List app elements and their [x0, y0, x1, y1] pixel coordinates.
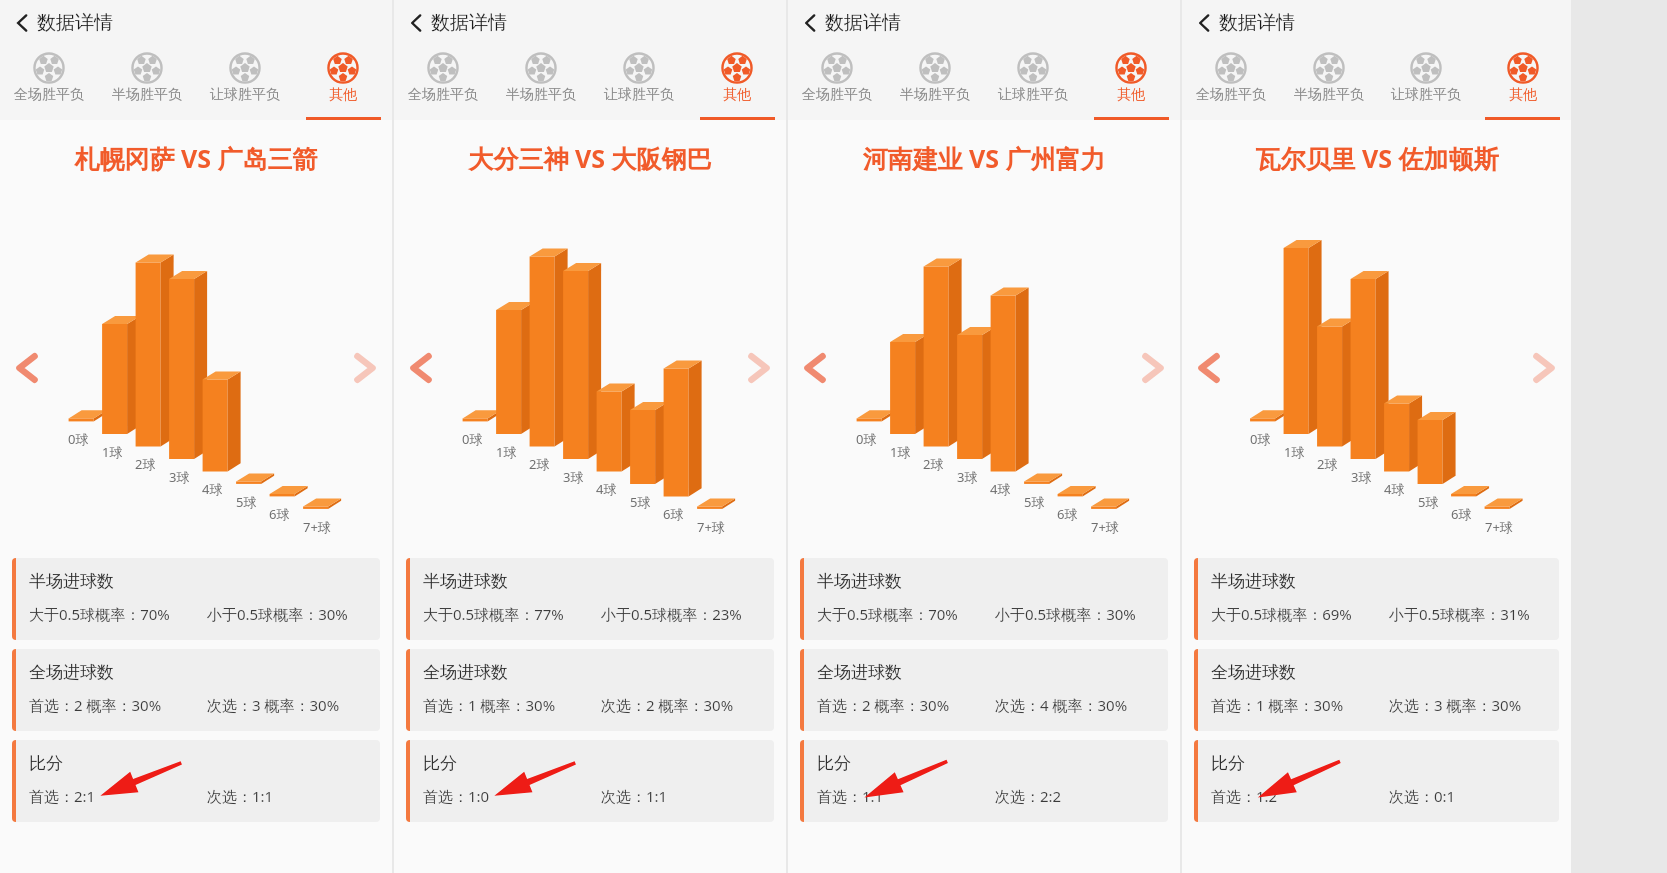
- staticText: 河南建业 VS 广州富力: [862, 141, 1106, 175]
- button[interactable]: 其他: [294, 46, 392, 120]
- button[interactable]: 全场胜平负: [1182, 46, 1280, 120]
- staticText: 6球: [1451, 505, 1472, 523]
- staticText: 0球: [68, 430, 89, 448]
- staticText: 7+球: [1091, 518, 1119, 536]
- button[interactable]: 让球胜平负: [196, 46, 294, 120]
- staticText: 首选：1 概率：30%: [1211, 695, 1344, 715]
- staticText: 0球: [1250, 430, 1271, 448]
- staticText: 全场胜平负: [408, 86, 478, 104]
- staticText: 次选：1:1: [601, 786, 668, 806]
- button[interactable]: 比分: [406, 740, 774, 822]
- staticText: 7+球: [1485, 518, 1513, 536]
- button[interactable]: Next: [1132, 347, 1174, 389]
- staticText: 首选：2:1: [29, 786, 96, 806]
- staticText: 数据详情: [37, 11, 113, 35]
- staticText: 1球: [890, 443, 911, 461]
- button[interactable]: Next: [738, 347, 780, 389]
- button[interactable]: Previous: [1188, 347, 1230, 389]
- staticText: 次选：4 概率：30%: [995, 695, 1128, 715]
- staticText: 次选：1:1: [207, 786, 274, 806]
- staticText: 首选：1:1: [817, 786, 884, 806]
- button[interactable]: Back: [798, 5, 907, 41]
- other: Back: [410, 14, 422, 32]
- staticText: 小于0.5球概率：23%: [601, 604, 742, 624]
- button[interactable]: 全场进球数: [12, 649, 380, 731]
- staticText: 全场进球数: [817, 662, 902, 683]
- button[interactable]: 半场胜平负: [492, 46, 590, 120]
- staticText: 6球: [663, 505, 684, 523]
- button[interactable]: 比分: [800, 740, 1168, 822]
- staticText: 首选：1:0: [423, 786, 490, 806]
- staticText: 数据详情: [1219, 11, 1295, 35]
- button[interactable]: 其他: [688, 46, 786, 120]
- staticText: 次选：2 概率：30%: [601, 695, 734, 715]
- button[interactable]: 半场进球数: [406, 558, 774, 640]
- staticText: 瓦尔贝里 VS 佐加顿斯: [1255, 141, 1499, 175]
- staticText: 1球: [1284, 443, 1305, 461]
- button[interactable]: Back: [404, 5, 513, 41]
- staticText: 次选：0:1: [1389, 786, 1456, 806]
- button[interactable]: Back: [10, 5, 119, 41]
- staticText: 全场进球数: [1211, 662, 1296, 683]
- button[interactable]: 半场进球数: [1194, 558, 1559, 640]
- button[interactable]: Previous: [6, 347, 48, 389]
- staticText: 全场进球数: [29, 662, 114, 683]
- button[interactable]: 全场进球数: [406, 649, 774, 731]
- staticText: 大于0.5球概率：70%: [29, 604, 170, 624]
- staticText: 大于0.5球概率：70%: [817, 604, 958, 624]
- staticText: 次选：3 概率：30%: [207, 695, 340, 715]
- button[interactable]: Next: [1523, 347, 1565, 389]
- staticText: 首选：1 概率：30%: [423, 695, 556, 715]
- staticText: 让球胜平负: [604, 86, 674, 104]
- button[interactable]: 半场胜平负: [1280, 46, 1377, 120]
- button[interactable]: 全场胜平负: [788, 46, 886, 120]
- button[interactable]: Next: [344, 347, 386, 389]
- button[interactable]: 全场进球数: [1194, 649, 1559, 731]
- button[interactable]: 让球胜平负: [984, 46, 1082, 120]
- staticText: 大分三神 VS 大阪钢巴: [468, 141, 712, 175]
- staticText: 让球胜平负: [210, 86, 280, 104]
- button[interactable]: 半场胜平负: [98, 46, 196, 120]
- staticText: 数据详情: [825, 11, 901, 35]
- staticText: 让球胜平负: [998, 86, 1068, 104]
- staticText: 半场胜平负: [1294, 86, 1364, 104]
- staticText: 数据详情: [431, 11, 507, 35]
- staticText: 2球: [135, 455, 156, 473]
- button[interactable]: Back: [1192, 5, 1301, 41]
- button[interactable]: 比分: [12, 740, 380, 822]
- button[interactable]: 其他: [1474, 46, 1571, 120]
- staticText: 5球: [630, 493, 651, 511]
- staticText: 其他: [723, 86, 751, 104]
- staticText: 2球: [529, 455, 550, 473]
- staticText: 半场胜平负: [900, 86, 970, 104]
- staticText: 次选：2:2: [995, 786, 1062, 806]
- button[interactable]: 比分: [1194, 740, 1559, 822]
- button[interactable]: 半场进球数: [12, 558, 380, 640]
- staticText: 3球: [957, 468, 978, 486]
- staticText: 札幌冈萨 VS 广岛三箭: [74, 141, 318, 175]
- staticText: 半场胜平负: [112, 86, 182, 104]
- staticText: 比分: [1211, 753, 1245, 774]
- staticText: 2球: [923, 455, 944, 473]
- button[interactable]: Previous: [400, 347, 442, 389]
- button[interactable]: 全场胜平负: [394, 46, 492, 120]
- staticText: 大于0.5球概率：77%: [423, 604, 564, 624]
- button[interactable]: 半场胜平负: [886, 46, 984, 120]
- staticText: 大于0.5球概率：69%: [1211, 604, 1352, 624]
- staticText: 3球: [1351, 468, 1372, 486]
- button[interactable]: 全场进球数: [800, 649, 1168, 731]
- staticText: 5球: [1418, 493, 1439, 511]
- button[interactable]: 全场胜平负: [0, 46, 98, 120]
- button[interactable]: 让球胜平负: [590, 46, 688, 120]
- staticText: 其他: [1509, 86, 1537, 104]
- staticText: 小于0.5球概率：30%: [995, 604, 1136, 624]
- button[interactable]: 半场进球数: [800, 558, 1168, 640]
- button[interactable]: 让球胜平负: [1377, 46, 1474, 120]
- staticText: 半场进球数: [817, 571, 902, 592]
- staticText: 其他: [1117, 86, 1145, 104]
- staticText: 0球: [462, 430, 483, 448]
- staticText: 比分: [423, 753, 457, 774]
- button[interactable]: 其他: [1082, 46, 1180, 120]
- button[interactable]: Previous: [794, 347, 836, 389]
- staticText: 5球: [1024, 493, 1045, 511]
